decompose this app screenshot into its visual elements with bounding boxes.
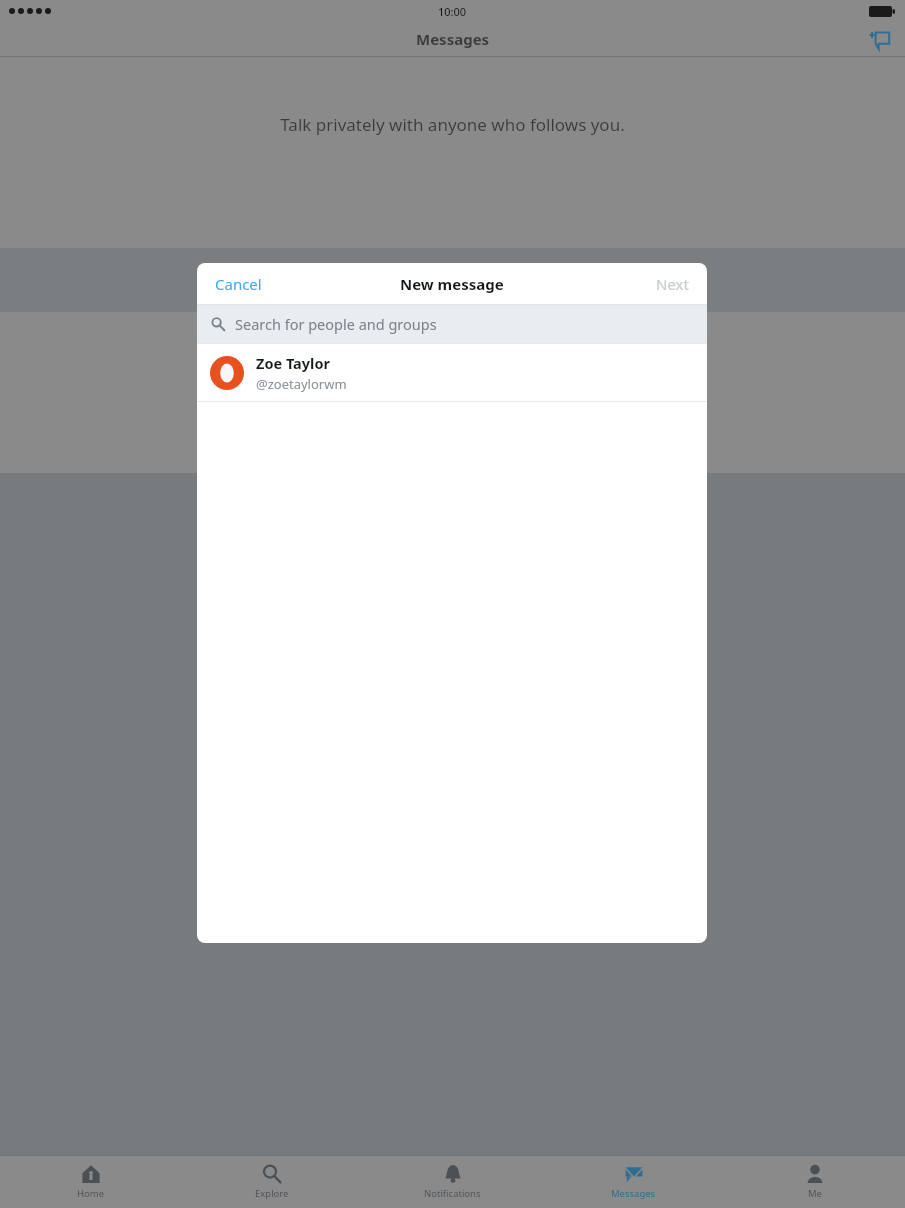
staticText: Messages [416,29,490,49]
staticText: Explore [255,1187,289,1200]
button[interactable]: New message [863,22,897,56]
staticText: Home [77,1187,105,1200]
button[interactable]: Home [0,1160,181,1204]
button[interactable]: Search for people and groups [197,305,707,343]
button[interactable]: Next [644,268,701,300]
staticText: Cancel [215,274,262,294]
button[interactable]: Notifications [362,1160,543,1204]
staticText: Messages [611,1187,656,1200]
button[interactable]: Cancel [203,268,274,300]
staticText: 10:00 [438,4,467,19]
staticText: Search for people and groups [235,314,437,334]
staticText: Notifications [424,1187,481,1200]
staticText: Zoe Taylor [256,353,330,373]
staticText: @zoetaylorwm [256,375,347,393]
staticText: Talk privately with anyone who follows y… [280,113,625,136]
button[interactable]: Me [724,1160,905,1204]
staticText: New message [400,274,504,294]
button[interactable]: Zoe Taylor [197,344,707,401]
button[interactable]: Messages [543,1160,724,1204]
staticText: Me [808,1187,822,1200]
button[interactable]: Explore [181,1160,362,1204]
staticText: Next [656,274,689,294]
